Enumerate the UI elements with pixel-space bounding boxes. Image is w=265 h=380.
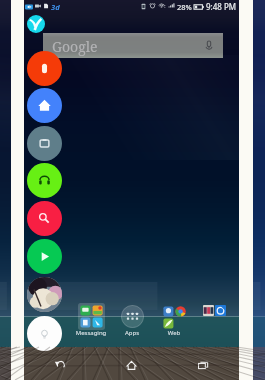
button[interactable]: Home (95, 350, 167, 380)
button[interactable]: headset (27, 163, 62, 198)
button[interactable]: Recents (167, 350, 239, 380)
button[interactable]: Gallery (203, 305, 214, 316)
staticText: 3d (51, 2, 60, 12)
button[interactable]: search (27, 201, 62, 236)
staticText: 28% (177, 2, 192, 12)
button[interactable]: App (215, 305, 226, 316)
button[interactable]: home (27, 88, 62, 123)
button[interactable]: Assistant (27, 15, 45, 33)
staticText: Apps (116, 329, 148, 337)
other: Voice search (203, 39, 215, 51)
button[interactable]: play (27, 239, 62, 274)
button[interactable]: Apps (121, 305, 144, 328)
staticText: 9:48 PM (206, 1, 237, 12)
button[interactable]: photo (27, 277, 62, 312)
button[interactable] (78, 303, 105, 330)
button[interactable]: light (27, 316, 62, 351)
button[interactable]: Back (24, 350, 95, 380)
staticText: Messaging (65, 329, 117, 337)
staticText: Web (158, 329, 190, 337)
button[interactable]: mic (27, 51, 62, 86)
staticText: Google (52, 37, 98, 56)
button[interactable] (161, 304, 188, 331)
button[interactable]: Google (43, 33, 223, 58)
button[interactable]: screen (27, 126, 62, 161)
